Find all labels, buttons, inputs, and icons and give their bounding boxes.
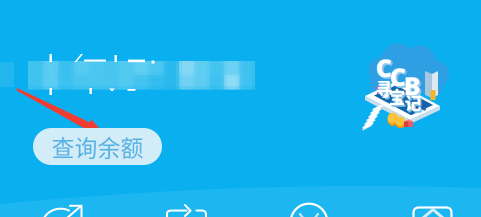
staticText: C <box>389 59 405 93</box>
staticText: 记 <box>404 90 421 115</box>
staticText: B <box>403 68 420 102</box>
staticText: 记 <box>406 92 423 116</box>
button[interactable]: Share <box>0 0 481 217</box>
staticText: 宝 <box>388 84 405 109</box>
button[interactable]: Forward <box>0 0 481 217</box>
staticText: 宝 <box>390 86 407 110</box>
button[interactable]: 查询余额 <box>33 128 162 165</box>
staticText: 寻 <box>375 76 392 101</box>
staticText: B <box>405 70 422 104</box>
staticText: 寻 <box>377 78 394 102</box>
button[interactable]: Emoji <box>0 0 481 217</box>
button[interactable]: Card <box>0 0 481 217</box>
staticText: C <box>375 50 391 84</box>
staticText: 查询余额 <box>51 130 143 163</box>
staticText: C <box>391 61 407 95</box>
staticText: C <box>377 52 393 86</box>
